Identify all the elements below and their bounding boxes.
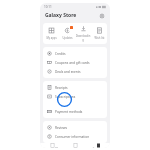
staticText: Credits — [55, 52, 66, 56]
button[interactable]: For you — [40, 143, 64, 148]
button[interactable]: Deals and events — [43, 67, 107, 76]
button[interactable]: Reviews — [43, 123, 107, 132]
button[interactable]: Consumer information — [43, 132, 107, 141]
button[interactable]: Credits — [43, 49, 107, 58]
button[interactable]: My apps — [43, 26, 59, 41]
staticText: Downloading — [75, 34, 91, 42]
button[interactable]: Updates — [59, 26, 75, 41]
button[interactable]: Downloading — [75, 24, 91, 43]
button[interactable]: Subscriptions — [43, 92, 107, 101]
staticText: Subscriptions — [55, 95, 76, 99]
staticText: Wish list — [94, 36, 105, 40]
staticText: Coupons and gift cards — [55, 61, 90, 65]
button[interactable]: Payment methods — [43, 107, 107, 116]
button[interactable]: Apps — [64, 143, 87, 148]
button[interactable]: Settings — [98, 12, 106, 20]
staticText: Receipts — [55, 86, 68, 90]
staticText: Updates — [62, 36, 73, 40]
staticText: Payment methods — [55, 110, 83, 114]
staticText: My apps — [46, 36, 57, 40]
staticText: Galaxy Store — [45, 12, 77, 19]
button[interactable]: Coupons and gift cards — [43, 58, 107, 67]
staticText: Deals and events — [55, 70, 81, 74]
button[interactable]: Receipts — [43, 83, 107, 92]
staticText: Consumer information — [55, 135, 90, 139]
button[interactable]: Menu — [87, 143, 110, 148]
button[interactable]: Wish list — [91, 26, 107, 41]
staticText: 10:11 — [44, 5, 52, 9]
staticText: Reviews — [55, 126, 67, 130]
